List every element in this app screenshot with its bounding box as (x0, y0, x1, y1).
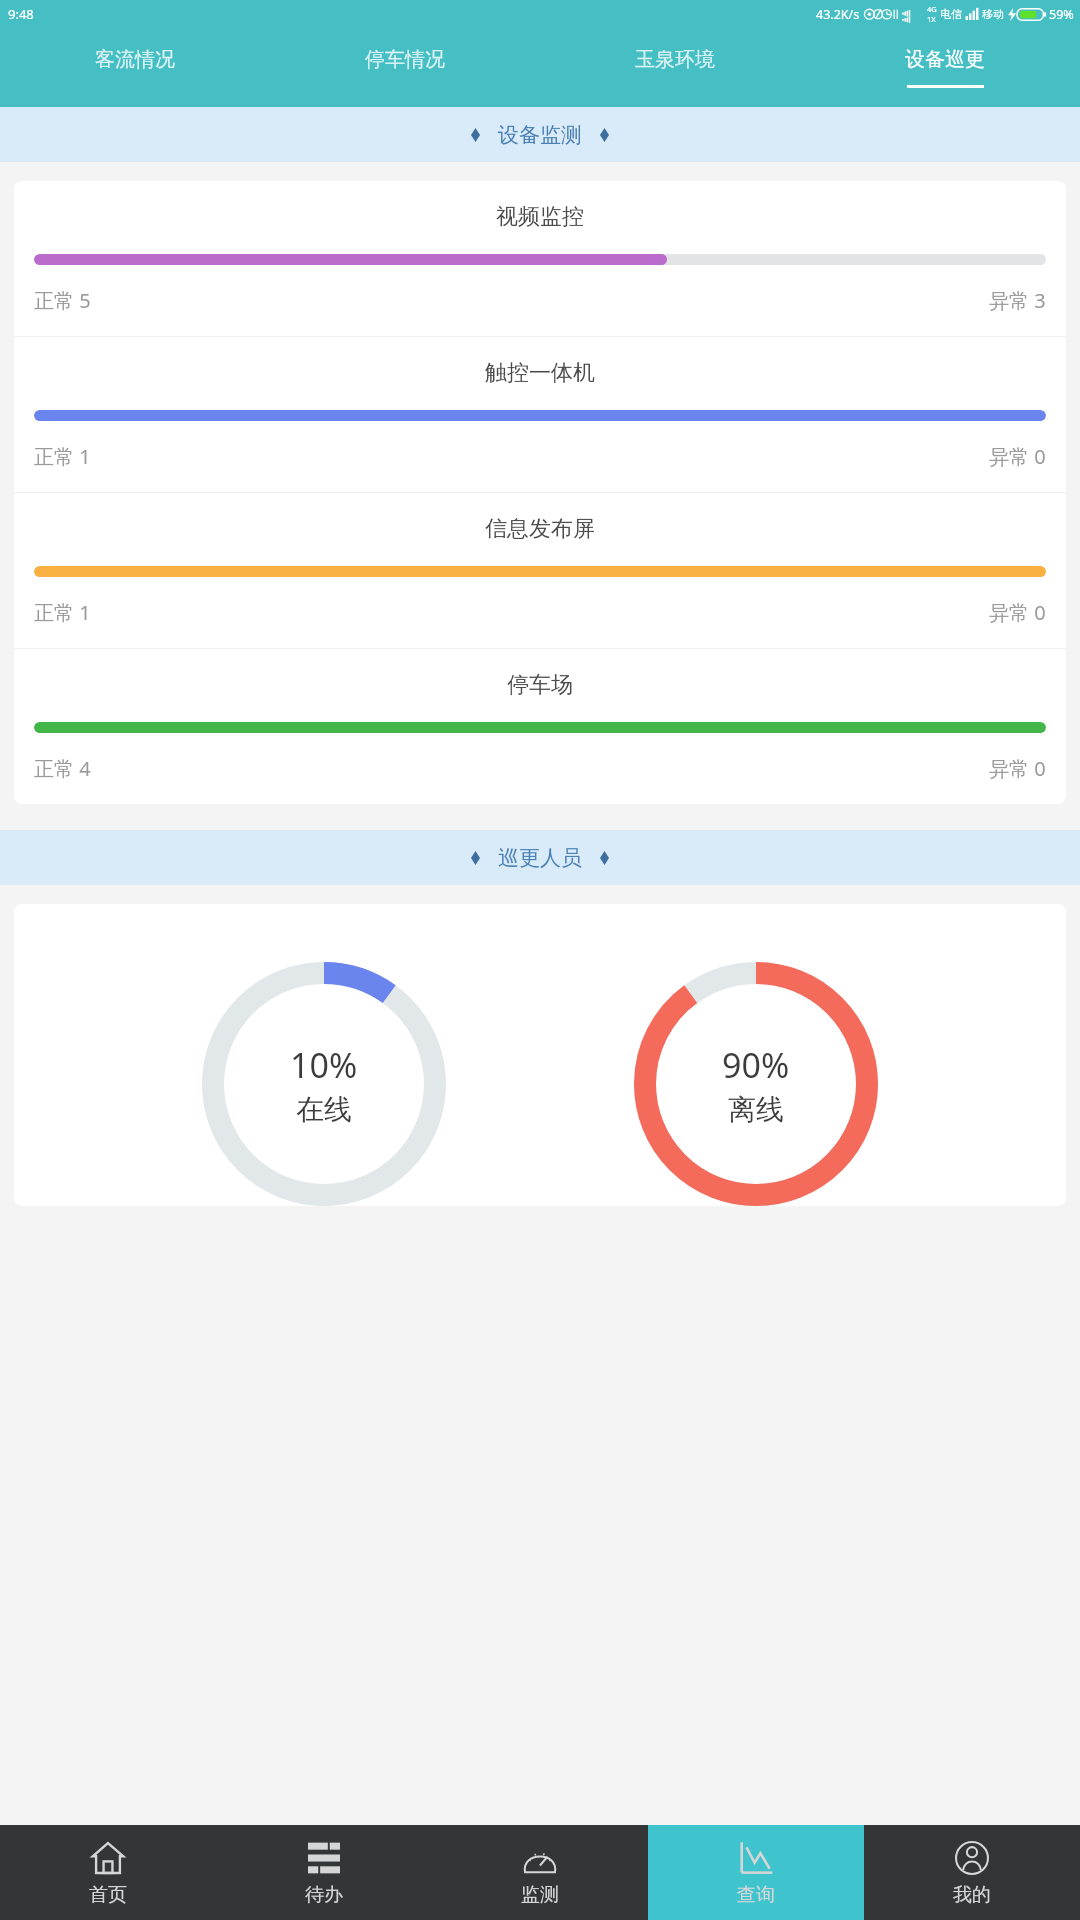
staticText: 监测 (521, 1883, 559, 1907)
button[interactable]: 视频监控 (14, 181, 1066, 336)
button[interactable]: 客流情况 (0, 27, 270, 107)
button[interactable]: 10% (202, 962, 446, 1206)
staticText: 1X (927, 14, 936, 24)
other: 查询 (739, 1841, 773, 1875)
other: 监测 (523, 1841, 557, 1875)
staticText: 9:48 (8, 5, 34, 23)
button[interactable]: 触控一体机 (14, 337, 1066, 492)
staticText: 正常 1 (34, 599, 91, 626)
button[interactable]: 设备巡更 (810, 27, 1080, 107)
staticText: 客流情况 (95, 47, 175, 72)
staticText: 正常 5 (34, 287, 91, 314)
button[interactable]: 监测 (432, 1825, 648, 1920)
button[interactable]: 首页 (0, 1825, 216, 1920)
button[interactable]: 查询 (648, 1825, 864, 1920)
staticText: 信息发布屏 (34, 515, 1046, 543)
staticText: 异常 0 (989, 443, 1046, 470)
staticText: 异常 0 (989, 755, 1046, 782)
button[interactable]: 玉泉环境 (540, 27, 810, 107)
staticText: 首页 (89, 1883, 127, 1907)
staticText: 巡更人员 (498, 845, 582, 871)
staticText: 电信 (940, 7, 962, 21)
staticText: 异常 3 (989, 287, 1046, 314)
staticText: 异常 0 (989, 599, 1046, 626)
button[interactable]: 信息发布屏 (14, 493, 1066, 648)
staticText: 视频监控 (34, 203, 1046, 231)
other: 我的 (955, 1841, 989, 1875)
staticText: 查询 (737, 1883, 775, 1907)
staticText: 移动 (982, 7, 1004, 21)
other: 首页 (91, 1841, 125, 1875)
staticText: 正常 1 (34, 443, 91, 470)
button[interactable]: 90% (634, 962, 878, 1206)
staticText: 10% (290, 1042, 358, 1088)
staticText: 停车情况 (365, 47, 445, 72)
staticText: 90% (722, 1042, 790, 1088)
staticText: 我的 (953, 1883, 991, 1907)
staticText: 43.2K/s (816, 6, 860, 23)
staticText: 正常 4 (34, 755, 91, 782)
other: 待办 (308, 1842, 340, 1874)
button[interactable]: 待办 (216, 1825, 432, 1920)
button[interactable]: 停车情况 (270, 27, 540, 107)
button[interactable]: 我的 (864, 1825, 1080, 1920)
staticText: 触控一体机 (34, 359, 1046, 387)
staticText: 玉泉环境 (635, 47, 715, 72)
button[interactable]: 停车场 (14, 649, 1066, 804)
staticText: 4G (927, 4, 937, 14)
staticText: 停车场 (34, 671, 1046, 699)
staticText: 设备巡更 (905, 47, 985, 72)
staticText: 离线 (728, 1092, 784, 1127)
staticText: 在线 (296, 1092, 352, 1127)
staticText: 待办 (305, 1883, 343, 1907)
staticText: 设备监测 (498, 122, 582, 148)
staticText: 59% (1049, 6, 1074, 23)
